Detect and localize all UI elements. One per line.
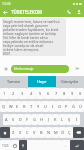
button[interactable]: . [62,140,70,150]
button[interactable]: B [38,127,45,138]
button[interactable]: 4 [27,88,36,99]
staticText: 6 [47,91,50,96]
button[interactable]: 5 [36,88,44,99]
staticText: veya yatirimli olarak gorunen [3,23,49,27]
staticText: ?123 [2,144,9,148]
button[interactable]: 2 [9,88,18,99]
staticText: G [33,117,36,122]
staticText: 9 [71,91,74,96]
button[interactable]: Y [35,101,42,112]
button[interactable]: Send [72,63,83,74]
button[interactable]: P [63,101,70,112]
staticText: Sevgili musterimiz, fatura ve taahhut [3,19,60,23]
button[interactable]: 3 [18,88,27,99]
button[interactable]: C [24,127,31,138]
button[interactable]: Enter [70,140,84,150]
button[interactable]: Shift [0,127,10,138]
staticText: Tek Sifre ile kredi kartin alma [3,35,48,39]
button[interactable]: 7 [52,88,60,99]
staticText: 5 [39,91,42,96]
button[interactable]: V [31,127,38,138]
staticText: U [44,104,47,109]
staticText: 8001 [3,51,11,55]
staticText: W [9,104,13,109]
button[interactable]: Tamam [0,76,28,87]
button[interactable]: T [28,101,35,112]
button[interactable]: M [52,127,59,138]
button[interactable]: Günaydın [56,76,84,87]
button[interactable]: Back [0,7,11,17]
staticText: 13:36 [2,1,11,6]
button[interactable]: 1 [0,88,9,99]
staticText: . [65,143,67,148]
button[interactable]: K [52,114,59,125]
button[interactable]: I [49,101,56,112]
staticText: 4 [30,91,33,96]
staticText: TÜRKTELEKOM [11,9,43,15]
button[interactable]: G [31,114,38,125]
button[interactable]: 9 [68,88,76,99]
button[interactable]: Ş [66,114,73,125]
button[interactable]: Backspace [73,127,84,138]
button[interactable]: F [24,114,31,125]
staticText: 2 [12,91,15,96]
button[interactable]: ?123 [0,140,11,150]
button[interactable]: Metin mesajı [11,65,69,73]
button[interactable]: O [56,101,63,112]
button[interactable]: N [45,127,52,138]
staticText: O [58,104,62,109]
button[interactable]: W [7,101,14,112]
button[interactable]: D [17,114,24,125]
staticText: J [48,117,50,122]
button[interactable]: Ü [77,101,84,112]
button[interactable]: 0 [76,88,84,99]
staticText: Ş [68,117,71,122]
staticText: 3 [21,91,24,96]
button[interactable]: Q [0,101,7,112]
staticText: M [54,130,58,135]
staticText: Metin mesajı [14,67,34,71]
staticText: Z [12,130,15,135]
button[interactable]: Ö [59,127,66,138]
button[interactable]: A [3,114,10,125]
staticText: L [61,117,64,122]
staticText: B [40,130,43,135]
button[interactable]: Attach [0,63,11,74]
button[interactable]: L [59,114,66,125]
staticText: irtikam saglayici tanitim ve belirtip [3,31,57,35]
button[interactable]: Call [64,7,74,17]
button[interactable]: Ğ [70,101,77,112]
staticText: R [23,104,26,109]
staticText: 8 [63,91,66,96]
button[interactable]: Ç [66,127,73,138]
button[interactable]: R [21,101,28,112]
button[interactable]: S [10,114,17,125]
button[interactable]: E [14,101,21,112]
staticText: veya yakinda verimlilze imkansiz [3,39,53,43]
button[interactable]: 8 [60,88,68,99]
staticText: Ç [68,130,71,135]
button[interactable]: Contact details [74,7,84,17]
button[interactable]: 6 [44,88,52,99]
button[interactable]: Emoji [11,140,19,150]
button[interactable]: H [38,114,45,125]
button[interactable]: Hayır [28,76,56,87]
staticText: F [26,117,29,122]
staticText: Q [2,104,6,109]
staticText: P [65,104,68,109]
staticText: T [30,104,33,109]
staticText: 1 [3,91,6,96]
staticText: X [19,130,22,135]
staticText: Tamam [7,79,21,84]
staticText: 0 [79,91,82,96]
staticText: sirkete lslem etmeyiniz. [3,47,40,51]
button[interactable]: J [45,114,52,125]
button[interactable]: İ [73,114,80,125]
button[interactable]: Z [10,127,17,138]
staticText: H [40,117,43,122]
staticText: Hayır [37,79,47,84]
button[interactable]: X [17,127,24,138]
button[interactable]: U [42,101,49,112]
button[interactable]: Voice input [19,140,27,150]
